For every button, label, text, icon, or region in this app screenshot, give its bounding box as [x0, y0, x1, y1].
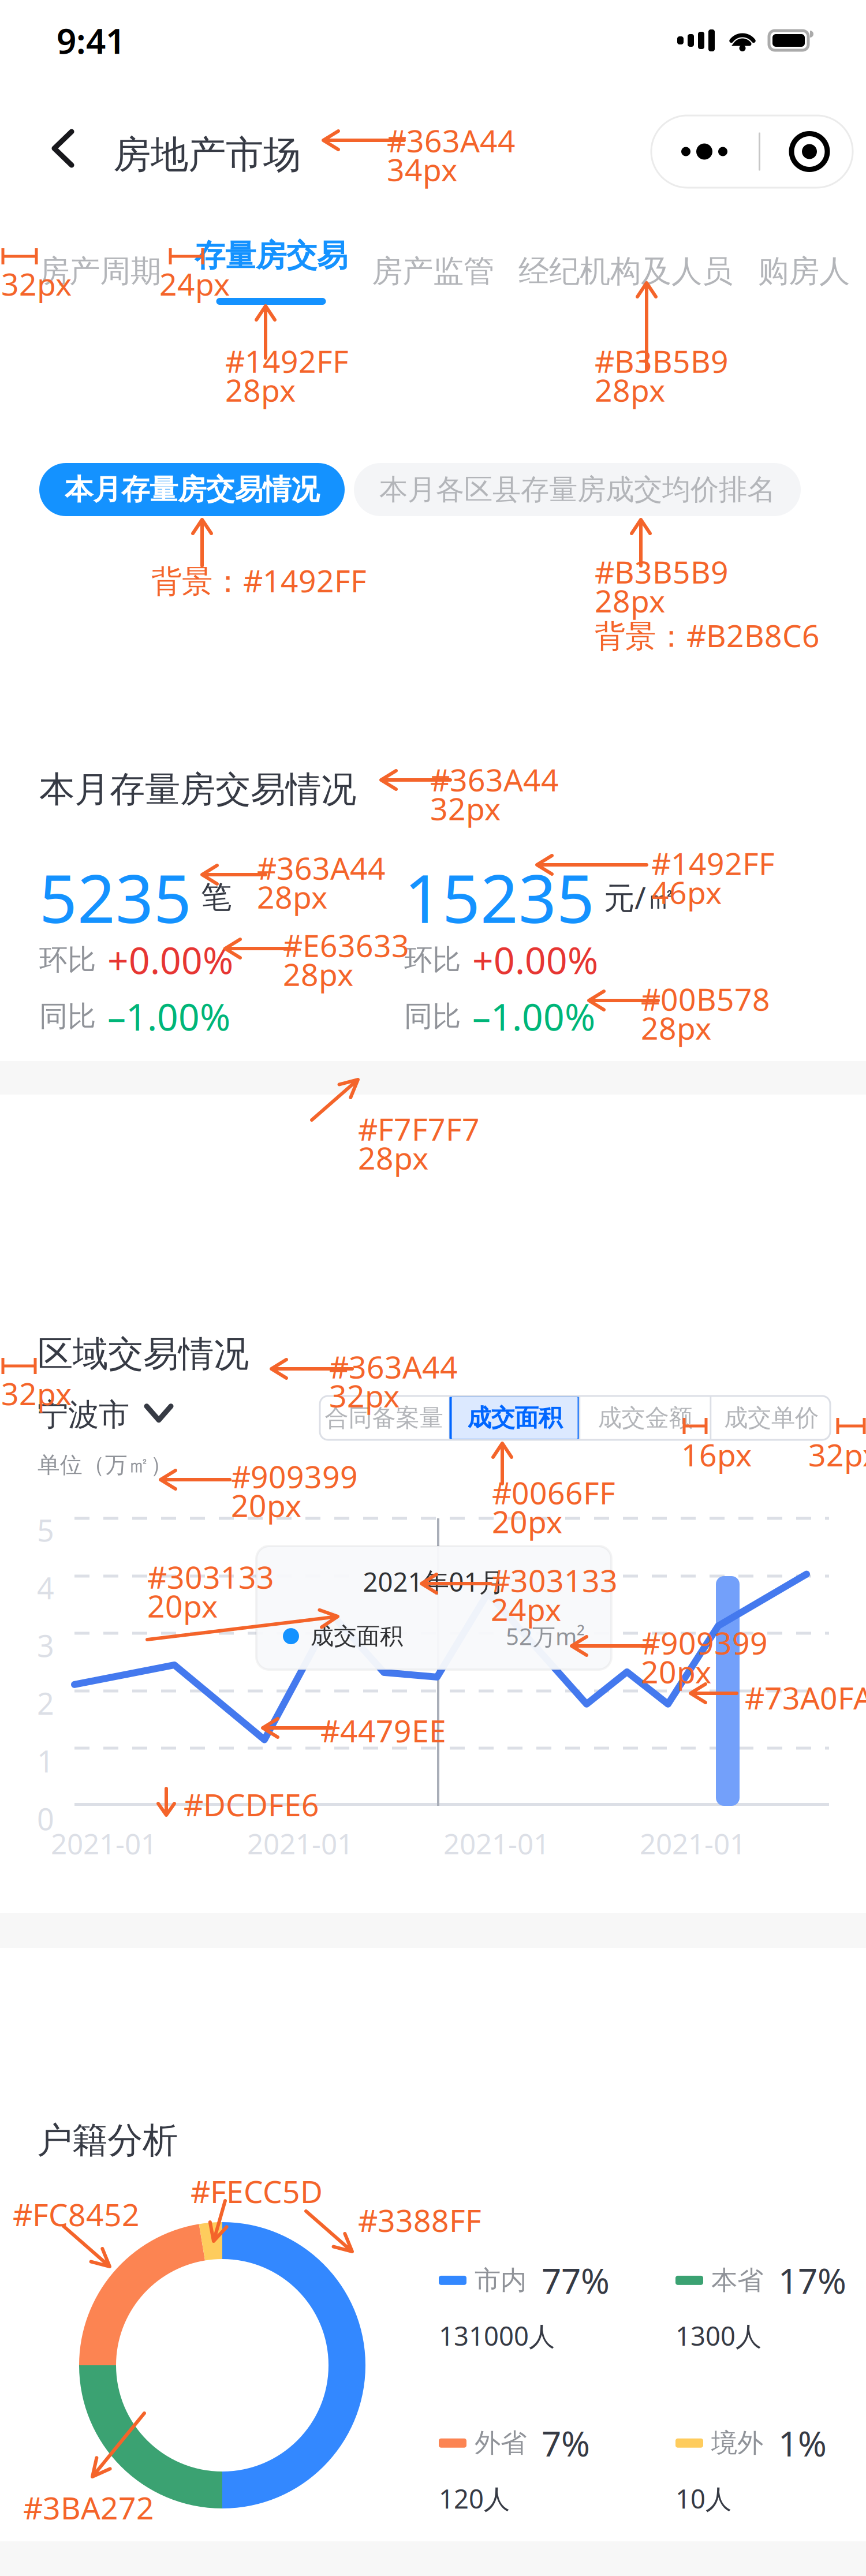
staticText: 5235 [39, 853, 192, 941]
staticText: #363A44 [329, 1346, 458, 1387]
staticText: 20px [492, 1501, 562, 1542]
staticText: 32px [808, 1434, 866, 1475]
staticText: 成交面积 [311, 1622, 403, 1650]
staticText: #303133 [491, 1560, 618, 1601]
button[interactable]: 返回 [51, 129, 75, 167]
staticText: #FECC5D [191, 2171, 323, 2212]
staticText: #73A0FA [745, 1677, 866, 1718]
staticText: #3BA272 [23, 2487, 154, 2528]
staticText: 32px [1, 263, 72, 304]
button[interactable]: 合同备案量 [319, 1396, 449, 1440]
staticText: 2021-01 [640, 1824, 746, 1862]
staticText: #4479EE [320, 1710, 446, 1751]
staticText: #DCDFE6 [184, 1784, 319, 1825]
staticText: +0.00% [472, 935, 598, 984]
staticText: 成交金额 [598, 1403, 693, 1433]
staticText: 房产周期 [39, 252, 161, 290]
staticText: 2021-01 [443, 1824, 550, 1862]
staticText: 背景：#1492FF [151, 560, 367, 601]
staticText: 成交面积 [467, 1403, 562, 1433]
staticText: 28px [225, 369, 296, 410]
staticText: #909399 [641, 1622, 768, 1663]
staticText: 52万m² [506, 1621, 585, 1651]
staticText: 购房人 [758, 252, 850, 290]
staticText: #FC8452 [13, 2194, 140, 2235]
staticText: 3 [37, 1625, 54, 1665]
staticText: 28px [358, 1137, 428, 1178]
staticText: 房产监管 [372, 252, 494, 290]
staticText: 2021-01 [51, 1824, 157, 1862]
staticText: 宁波市 [38, 1396, 129, 1434]
button[interactable]: 成交单价 [712, 1396, 831, 1440]
button[interactable]: 更多 [651, 115, 853, 188]
staticText: #363A44 [257, 847, 386, 888]
button[interactable]: 本月各区县存量房成交均价排名 [354, 463, 801, 516]
staticText: 经纪机构及人员 [518, 252, 733, 290]
staticText: #E63633 [283, 925, 409, 966]
staticText: #1492FF [651, 843, 775, 884]
staticText: 20px [641, 1651, 711, 1692]
staticText: 同比 [404, 999, 461, 1034]
staticText: 28px [257, 876, 327, 917]
staticText: 环比 [404, 942, 461, 977]
staticText: 合同备案量 [325, 1403, 443, 1433]
staticText: 24px [159, 263, 230, 304]
button[interactable]: 存量房交易 [195, 238, 348, 305]
staticText: 本月各区县存量房成交均价排名 [379, 472, 775, 507]
button[interactable]: 经纪机构及人员 [518, 253, 733, 289]
staticText: 单位（万㎡） [38, 1451, 173, 1479]
staticText: 外省 [475, 2427, 527, 2459]
button[interactable]: 成交面积 [451, 1396, 579, 1440]
staticText: 1 [37, 1741, 54, 1781]
button[interactable]: 房产周期 [39, 253, 161, 289]
staticText: 2021年01月 [363, 1564, 505, 1599]
staticText: 28px [283, 954, 353, 994]
staticText: #B3B5B9 [595, 340, 729, 381]
staticText: 24px [491, 1589, 561, 1629]
staticText: 77% [542, 2257, 610, 2303]
staticText: 市内 [475, 2264, 527, 2296]
staticText: #1492FF [225, 340, 349, 381]
staticText: 32px [1, 1373, 72, 1414]
staticText: 户籍分析 [37, 2119, 178, 2162]
staticText: 区域交易情况 [38, 1332, 249, 1376]
staticText: #363A44 [387, 120, 516, 161]
staticText: 5 [37, 1510, 54, 1550]
staticText: 成交单价 [724, 1403, 819, 1433]
staticText: #3388FF [358, 2200, 481, 2240]
staticText: –1.00% [107, 992, 230, 1041]
staticText: 4 [37, 1568, 54, 1608]
button[interactable]: 本月存量房交易情况 [39, 463, 345, 516]
staticText: 34px [387, 149, 457, 190]
staticText: 9:41 [57, 17, 125, 63]
staticText: #00B578 [641, 978, 770, 1019]
button[interactable]: 成交金额 [581, 1396, 710, 1440]
staticText: 0 [37, 1799, 54, 1839]
staticText: –1.00% [472, 992, 595, 1041]
staticText: 本省 [711, 2264, 763, 2296]
staticText: 20px [231, 1485, 301, 1526]
staticText: 120人 [439, 2481, 510, 2516]
staticText: 房地产市场 [113, 132, 301, 178]
staticText: 本月存量房交易情况 [39, 768, 356, 811]
button[interactable]: 房产监管 [372, 253, 494, 289]
staticText: 7% [542, 2420, 590, 2466]
staticText: 背景：#B2B8C6 [595, 615, 820, 656]
staticText: 16px [681, 1434, 752, 1475]
staticText: #F7F7F7 [358, 1108, 480, 1149]
staticText: 32px [329, 1375, 400, 1416]
button[interactable]: 购房人 [758, 253, 850, 289]
staticText: #363A44 [430, 759, 559, 800]
staticText: 10人 [675, 2481, 731, 2516]
staticText: 17% [778, 2257, 846, 2303]
staticText: 环比 [39, 942, 96, 977]
staticText: 32px [430, 788, 501, 829]
staticText: +0.00% [107, 935, 233, 984]
staticText: #303133 [147, 1556, 274, 1597]
staticText: 46px [651, 872, 722, 912]
staticText: #0066FF [492, 1472, 615, 1513]
staticText: 本月存量房交易情况 [65, 472, 319, 507]
staticText: 同比 [39, 999, 96, 1034]
staticText: 元/㎡ [604, 877, 677, 918]
staticText: 15235 [404, 853, 595, 941]
